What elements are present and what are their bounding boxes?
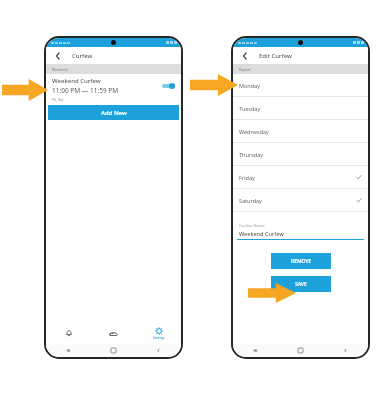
staticText: Add New xyxy=(101,109,127,117)
button[interactable]: Back xyxy=(136,348,181,353)
button[interactable]: Tuesday xyxy=(233,97,368,119)
button[interactable]: Home xyxy=(91,348,136,353)
button[interactable]: Add New xyxy=(48,105,179,120)
staticText: Weekend xyxy=(52,67,68,72)
staticText: Tuesday xyxy=(239,105,362,112)
button[interactable]: Alarms xyxy=(46,322,91,344)
button[interactable]: Settings xyxy=(136,322,181,344)
staticText: REMOVE xyxy=(291,258,312,265)
button[interactable]: Back xyxy=(239,50,251,62)
staticText: Monday xyxy=(239,82,362,89)
staticText: Curfew xyxy=(72,52,93,60)
staticText: Weekend Curfew xyxy=(52,77,101,85)
staticText: Curfew Name xyxy=(239,223,265,228)
staticText: Thursday xyxy=(239,151,362,158)
button[interactable]: Back xyxy=(52,50,64,62)
staticText: Settings xyxy=(153,336,165,340)
staticText: 11:00 PM — 11:59 PM xyxy=(52,86,119,95)
staticText: SAVE xyxy=(295,281,307,288)
staticText: Repeat xyxy=(239,67,251,72)
button[interactable]: Recents xyxy=(233,348,278,353)
staticText: Fri, Sat xyxy=(52,97,64,102)
button[interactable]: Monday xyxy=(233,74,368,96)
staticText: Saturday xyxy=(239,197,356,204)
button[interactable]: Thursday xyxy=(233,143,368,165)
staticText: Wednesday xyxy=(239,128,362,135)
button[interactable]: Friday xyxy=(233,166,368,188)
button[interactable]: Weekend Curfew xyxy=(46,74,181,105)
staticText: Friday xyxy=(239,174,356,181)
button[interactable]: Recents xyxy=(46,348,91,353)
button[interactable]: Back xyxy=(323,348,368,353)
button[interactable]: SAVE xyxy=(271,276,331,292)
button[interactable]: Saturday xyxy=(233,189,368,211)
button[interactable]: Toggle curfew xyxy=(162,83,175,89)
button[interactable]: Sleep xyxy=(91,322,136,344)
button[interactable]: Wednesday xyxy=(233,120,368,142)
staticText: Edit Curfew xyxy=(259,52,292,60)
staticText: Weekend Curfew xyxy=(239,230,284,237)
button[interactable]: Home xyxy=(278,348,323,353)
button[interactable]: REMOVE xyxy=(271,253,331,269)
